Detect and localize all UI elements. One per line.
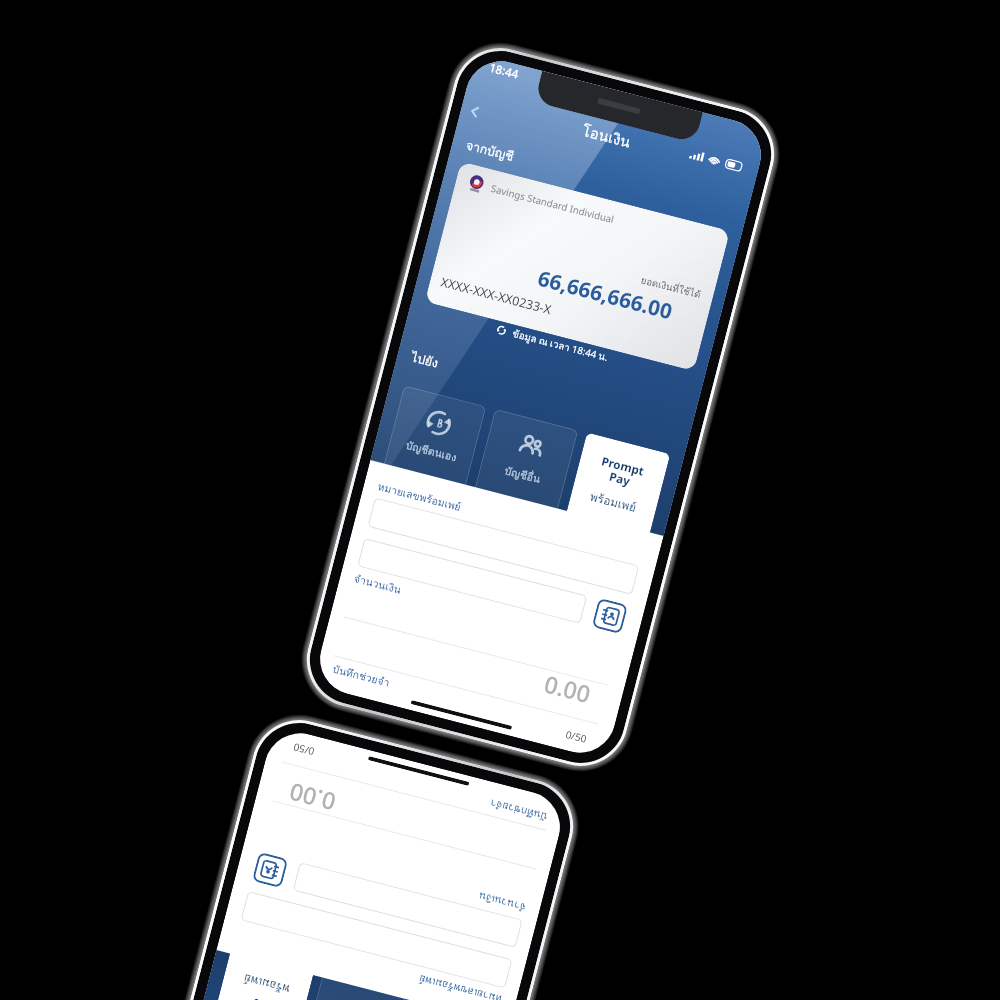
- staticText: ข้อมูล ณ เวลา 18:44 น.: [511, 326, 610, 365]
- button[interactable]: บัญชีอื่น: [302, 971, 407, 1000]
- button[interactable]: บัญชีตนเอง: [382, 385, 486, 491]
- staticText: หมายเลขพร้อมเพย์: [417, 970, 504, 1000]
- staticText: หมายเลขพร้อมเพย์: [376, 478, 463, 516]
- button[interactable]: ข้อมูล ณ เวลา 18:44 น.: [492, 320, 612, 367]
- staticText: 0.00: [285, 776, 339, 818]
- staticText: Prompt Pay: [234, 994, 284, 1000]
- staticText: จากบัญชี: [464, 135, 516, 167]
- staticText: 18:44: [487, 60, 520, 83]
- staticText: จำนวนเงิน: [352, 570, 404, 599]
- staticText: โอนเงิน: [580, 119, 634, 154]
- staticText: พร้อมเพย์: [588, 488, 639, 518]
- button[interactable]: Prompt Pay: [565, 432, 670, 538]
- staticText: พร้อมเพย์: [241, 968, 292, 998]
- button[interactable]: Contacts: [252, 852, 288, 888]
- staticText: XXXX-XXX-XX0233-X: [439, 273, 554, 318]
- button[interactable]: Contacts: [592, 598, 628, 634]
- staticText: บัญชีอื่น: [503, 462, 543, 488]
- staticText: บันทึกช่วยจำ: [488, 794, 549, 825]
- button[interactable]: [368, 497, 639, 595]
- staticText: Prompt Pay: [596, 453, 646, 492]
- staticText: บัญชีตนเอง: [404, 437, 459, 466]
- staticText: 0/50: [564, 727, 589, 746]
- staticText: 66,666,666.00: [535, 264, 675, 326]
- staticText: Savings Standard Individual: [490, 182, 616, 226]
- button[interactable]: [293, 862, 523, 948]
- staticText: จำนวนเงิน: [476, 887, 528, 916]
- staticText: 0/50: [291, 740, 316, 759]
- staticText: 0.00: [541, 667, 595, 710]
- button[interactable]: [241, 891, 512, 988]
- button[interactable]: [357, 538, 587, 624]
- button[interactable]: Savings Standard Individual: [425, 161, 730, 371]
- staticText: บันทึกช่วยจำ: [331, 661, 392, 692]
- staticText: ไปยัง: [409, 347, 441, 374]
- button[interactable]: บัญชีตนเอง: [394, 995, 498, 1000]
- button[interactable]: Prompt Pay: [210, 948, 315, 1000]
- staticText: ยอดเงินที่ใช้ได้: [639, 272, 703, 302]
- button[interactable]: บัญชีอื่น: [473, 409, 578, 514]
- button[interactable]: Back: [461, 98, 489, 126]
